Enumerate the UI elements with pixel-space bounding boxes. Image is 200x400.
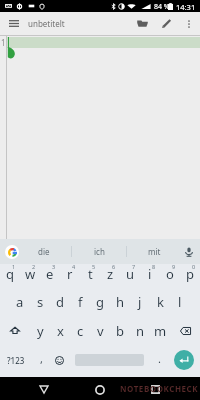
- button[interactable]: w: [20, 262, 40, 284]
- staticText: 3: [52, 263, 56, 270]
- staticText: e: [46, 265, 54, 283]
- staticText: j: [138, 293, 142, 311]
- button[interactable]: Home: [88, 377, 112, 400]
- staticText: d: [56, 293, 64, 311]
- button[interactable]: Shift: [0, 319, 30, 342]
- staticText: 1: [12, 263, 16, 270]
- staticText: b: [116, 322, 124, 340]
- staticText: 0: [192, 263, 196, 270]
- button[interactable]: Edit: [154, 12, 178, 35]
- button[interactable]: ,: [32, 347, 50, 373]
- staticText: 8: [152, 263, 156, 270]
- staticText: 1: [1, 37, 6, 48]
- staticText: ?123: [7, 355, 25, 366]
- button[interactable]: f: [70, 290, 90, 313]
- button[interactable]: Enter: [169, 347, 199, 373]
- staticText: y: [37, 322, 44, 340]
- staticText: c: [77, 322, 84, 340]
- button[interactable]: h: [110, 290, 130, 313]
- staticText: 6: [112, 263, 116, 270]
- staticText: o: [166, 265, 174, 283]
- staticText: v: [97, 322, 104, 340]
- staticText: unbetitelt: [28, 18, 65, 29]
- button[interactable]: Recent apps: [143, 377, 167, 400]
- staticText: s: [37, 293, 44, 311]
- button[interactable]: Space: [69, 347, 150, 373]
- button[interactable]: Voice input: [178, 239, 200, 264]
- staticText: NOTEBOOKCHECK: [120, 383, 199, 394]
- staticText: l: [178, 293, 182, 311]
- button[interactable]: u: [120, 262, 140, 284]
- button[interactable]: Backspace: [170, 319, 200, 342]
- button[interactable]: Open file: [130, 12, 154, 35]
- button[interactable]: ?123: [0, 347, 32, 373]
- button[interactable]: q: [0, 262, 20, 284]
- button[interactable]: j: [130, 290, 150, 313]
- staticText: a: [16, 293, 24, 311]
- staticText: z: [107, 265, 114, 283]
- button[interactable]: .: [150, 347, 169, 373]
- staticText: r: [67, 265, 73, 283]
- staticText: 84 %: [154, 2, 170, 12]
- button[interactable]: r: [60, 262, 80, 284]
- staticText: 7: [132, 263, 136, 270]
- button[interactable]: n: [130, 319, 150, 342]
- staticText: w: [25, 265, 36, 283]
- staticText: i: [148, 265, 152, 283]
- button[interactable]: s: [30, 290, 50, 313]
- button[interactable]: die: [16, 239, 72, 264]
- button[interactable]: More options: [178, 12, 200, 35]
- button[interactable]: i: [140, 262, 160, 284]
- staticText: u: [126, 265, 135, 283]
- button[interactable]: m: [150, 319, 170, 342]
- button[interactable]: mit: [127, 239, 182, 264]
- staticText: .: [158, 351, 161, 366]
- staticText: 5: [92, 263, 96, 270]
- button[interactable]: y: [30, 319, 50, 342]
- button[interactable]: v: [90, 319, 110, 342]
- staticText: n: [136, 322, 145, 340]
- button[interactable]: g: [90, 290, 110, 313]
- button[interactable]: t: [80, 262, 100, 284]
- staticText: p: [186, 265, 194, 283]
- staticText: k: [157, 293, 164, 311]
- button[interactable]: Back: [32, 377, 56, 400]
- button[interactable]: a: [10, 290, 30, 313]
- staticText: mit: [148, 246, 161, 257]
- staticText: m: [154, 322, 167, 340]
- staticText: t: [88, 265, 93, 283]
- staticText: g: [96, 293, 104, 311]
- staticText: f: [78, 293, 83, 311]
- button[interactable]: k: [150, 290, 170, 313]
- staticText: 4: [72, 263, 76, 270]
- button[interactable]: b: [110, 319, 130, 342]
- button[interactable]: o: [160, 262, 180, 284]
- button[interactable]: c: [70, 319, 90, 342]
- button[interactable]: l: [170, 290, 190, 313]
- staticText: x: [57, 322, 64, 340]
- button[interactable]: Menu: [0, 12, 24, 35]
- button[interactable]: z: [100, 262, 120, 284]
- staticText: 14:31: [176, 2, 196, 12]
- staticText: die: [38, 246, 50, 257]
- staticText: q: [6, 265, 14, 283]
- button[interactable]: d: [50, 290, 70, 313]
- staticText: h: [116, 293, 125, 311]
- button[interactable]: x: [50, 319, 70, 342]
- staticText: ich: [94, 246, 105, 257]
- button[interactable]: p: [180, 262, 200, 284]
- staticText: 2: [32, 263, 36, 270]
- button[interactable]: Google search: [0, 239, 24, 264]
- staticText: ,: [40, 351, 43, 366]
- button[interactable]: ich: [72, 239, 127, 264]
- staticText: 9: [172, 263, 176, 270]
- button[interactable]: e: [40, 262, 60, 284]
- button[interactable]: Emoji: [50, 347, 69, 373]
